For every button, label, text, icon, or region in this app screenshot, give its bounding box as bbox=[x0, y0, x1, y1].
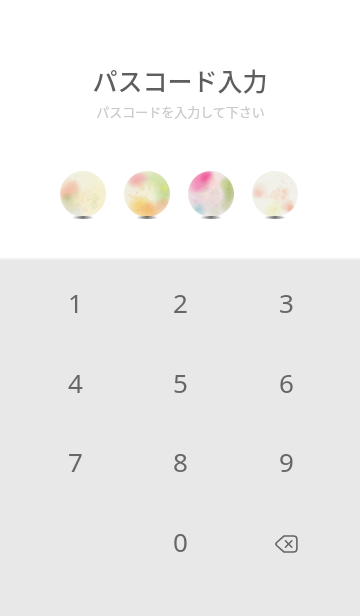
staticText: パスコード入力 bbox=[92, 62, 268, 98]
staticText: 9 bbox=[279, 444, 294, 479]
staticText: 1 bbox=[68, 285, 83, 320]
button[interactable]: 6 bbox=[234, 342, 338, 422]
button[interactable]: 7 bbox=[23, 421, 127, 501]
button[interactable]: 2 bbox=[128, 262, 232, 342]
button[interactable]: 1 bbox=[23, 262, 127, 342]
button[interactable]: 3 bbox=[234, 262, 338, 342]
staticText: 0 bbox=[173, 524, 188, 559]
staticText: 8 bbox=[173, 444, 188, 479]
button[interactable]: 8 bbox=[128, 421, 232, 501]
staticText: パスコードを入力して下さい bbox=[96, 102, 265, 121]
staticText: 5 bbox=[173, 365, 188, 400]
button[interactable]: 0 bbox=[128, 501, 232, 581]
button[interactable]: 5 bbox=[128, 342, 232, 422]
staticText: 3 bbox=[279, 285, 294, 320]
button[interactable]: 9 bbox=[234, 421, 338, 501]
staticText: 6 bbox=[279, 365, 294, 400]
staticText: 4 bbox=[68, 365, 83, 400]
button[interactable]: 4 bbox=[23, 342, 127, 422]
other: Delete bbox=[272, 530, 300, 558]
staticText: 7 bbox=[68, 444, 83, 479]
button[interactable]: Delete bbox=[234, 501, 338, 581]
staticText: 2 bbox=[173, 285, 188, 320]
